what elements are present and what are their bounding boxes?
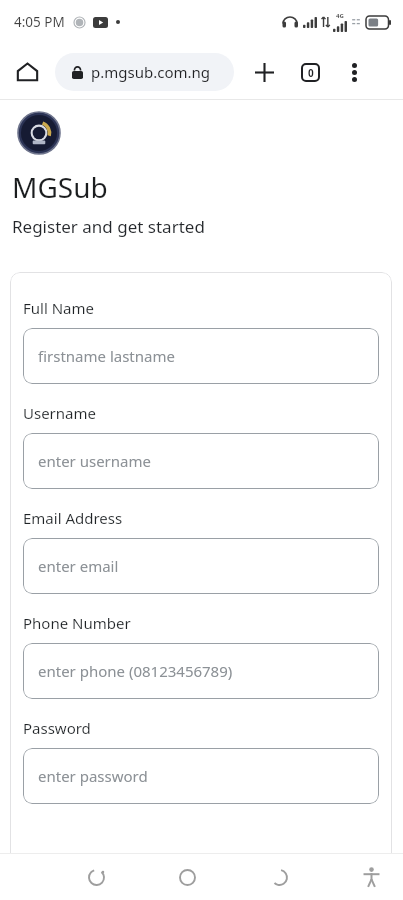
button[interactable]: Home (0, 44, 55, 99)
button[interactable]: Back (253, 854, 305, 900)
staticText: enter password (38, 766, 148, 786)
button[interactable]: p.mgsub.com.ng (55, 53, 234, 91)
button[interactable]: More options (334, 52, 374, 92)
staticText: Register and get started (12, 215, 205, 238)
staticText: 4:05 PM (14, 13, 65, 31)
button[interactable]: enter username (23, 433, 379, 489)
button[interactable]: Recent apps (70, 854, 122, 900)
staticText: enter username (38, 451, 151, 471)
staticText: enter phone (08123456789) (38, 661, 233, 681)
staticText: firstname lastname (38, 346, 175, 366)
staticText: 0 (308, 66, 314, 80)
staticText: Username (23, 403, 96, 423)
button[interactable]: Accessibility (345, 854, 397, 900)
button[interactable]: New tab (242, 50, 286, 94)
staticText: Full Name (23, 298, 94, 318)
button[interactable]: enter phone (08123456789) (23, 643, 379, 699)
staticText: p.mgsub.com.ng (91, 62, 211, 82)
button[interactable]: enter email (23, 538, 379, 594)
button[interactable]: firstname lastname (23, 328, 379, 384)
staticText: MGSub (12, 168, 108, 206)
staticText: enter email (38, 556, 119, 576)
staticText: Password (23, 718, 91, 738)
staticText: 4G (336, 12, 344, 20)
staticText: Email Address (23, 508, 123, 528)
staticText: Phone Number (23, 613, 131, 633)
button[interactable]: Tabs (288, 50, 332, 94)
button[interactable]: enter password (23, 748, 379, 804)
button[interactable]: Home (161, 854, 213, 900)
